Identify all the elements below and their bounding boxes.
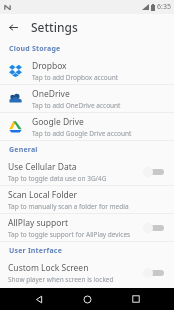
staticText: Dropbox [32,60,67,72]
button[interactable]: Back [29,289,49,309]
staticText: Tap to toggle support for AllPlay device… [8,230,131,239]
staticText: Settings [31,19,78,35]
button[interactable]: Toggle [142,266,166,280]
staticText: Use Cellular Data [8,161,77,173]
staticText: 6:35 [157,2,171,12]
button[interactable]: Scan Local Folder [0,186,174,213]
staticText: AllPlay support [8,217,68,229]
button[interactable]: OneDrive [0,85,174,112]
staticText: Tap to manually scan a folder for media [8,202,129,211]
staticText: Custom Lock Screen [8,262,89,274]
button[interactable]: Dropbox [0,57,174,84]
staticText: Scan Local Folder [8,189,78,201]
staticText: Tap to toggle data use on 3G/4G [8,174,107,183]
button[interactable]: Custom Lock Screen [0,259,174,286]
staticText: OneDrive [32,88,70,100]
staticText: General [9,145,38,155]
button[interactable]: Google Drive [0,113,174,140]
button[interactable]: Toggle [142,165,166,179]
staticText: Google Drive [32,116,84,128]
button[interactable]: Toggle [142,221,166,235]
button[interactable]: AllPlay support [0,214,174,241]
staticText: Tap to add OneDrive account [32,101,121,110]
staticText: Cloud Storage [9,44,61,54]
button[interactable]: Use Cellular Data [0,158,174,185]
button[interactable]: Recent apps [126,289,146,309]
staticText: Tap to add Dropbox account [32,73,119,82]
staticText: User Interface [9,246,63,256]
button[interactable]: Back [2,16,24,38]
staticText: Tap to add Google Drive account [32,129,132,138]
staticText: Show player when screen is locked [8,275,114,284]
button[interactable]: Home [77,289,97,309]
